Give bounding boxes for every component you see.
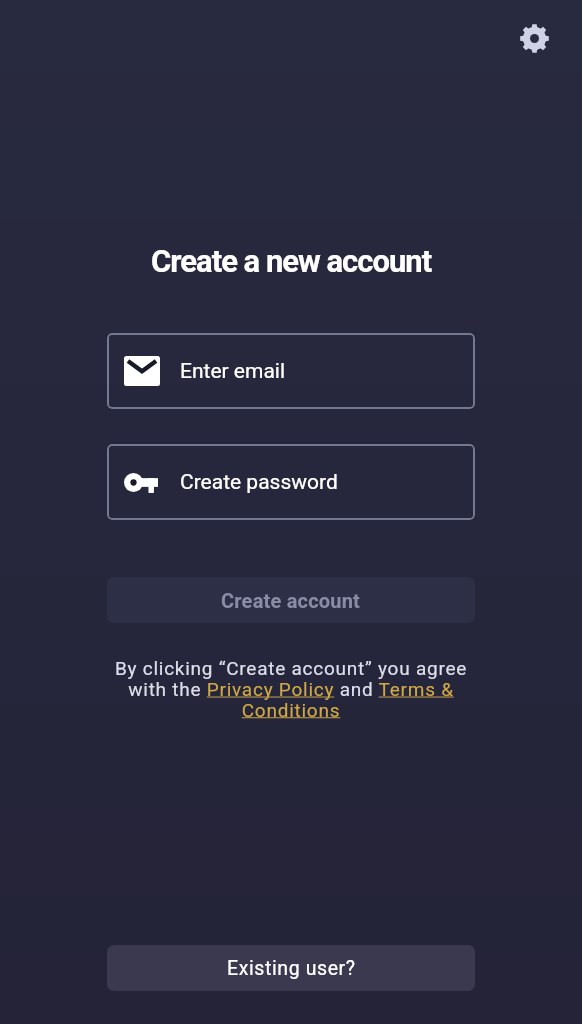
button[interactable]: Create password — [107, 444, 475, 520]
staticText: Create a new account — [151, 243, 432, 279]
button[interactable]: Enter email — [107, 333, 475, 409]
staticText: By clicking “Create account” you agree w… — [107, 657, 475, 721]
staticText: Create account — [221, 589, 361, 612]
staticText: Enter email — [180, 359, 286, 384]
staticText: Existing user? — [227, 957, 356, 980]
staticText: Create password — [180, 470, 338, 495]
button[interactable]: Existing user? — [107, 945, 475, 991]
button[interactable]: Create account — [107, 577, 475, 623]
button[interactable]: Settings — [512, 16, 556, 60]
